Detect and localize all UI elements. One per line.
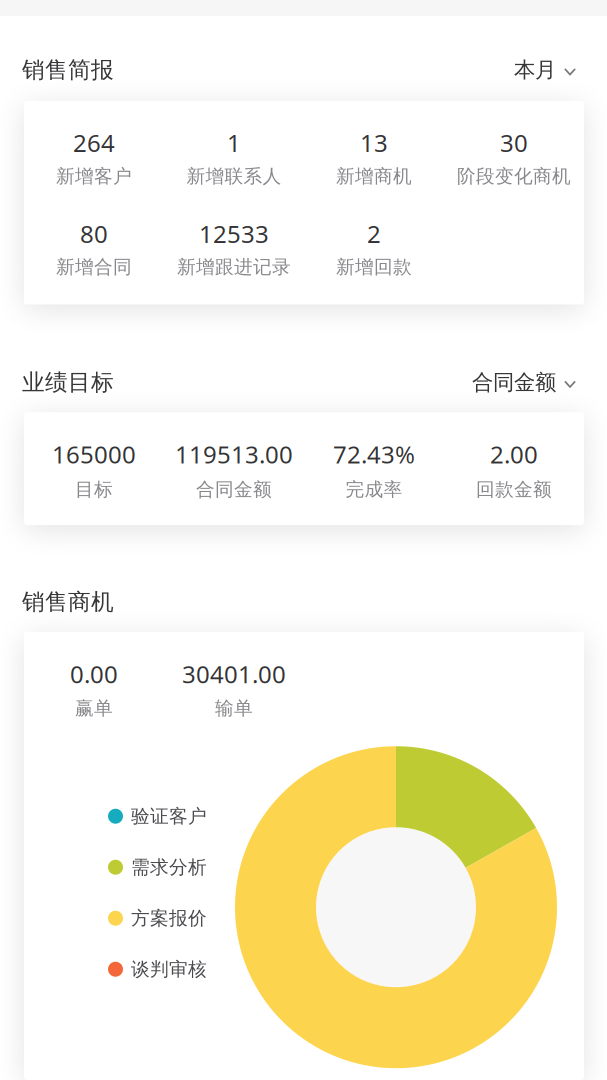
button[interactable]: 谈判审核: [108, 958, 238, 981]
staticText: 阶段变化商机: [457, 165, 571, 188]
button[interactable]: 1: [164, 127, 304, 188]
button[interactable]: 2.00: [444, 438, 584, 501]
button[interactable]: 验证客户: [108, 805, 238, 828]
staticText: 1: [227, 127, 241, 159]
staticText: 0.00: [70, 658, 118, 690]
staticText: 2.00: [490, 438, 538, 470]
staticText: 赢单: [75, 697, 113, 720]
staticText: 需求分析: [131, 856, 207, 879]
button[interactable]: 13: [304, 127, 444, 188]
button[interactable]: 264: [24, 127, 164, 188]
staticText: 新增跟进记录: [177, 255, 291, 278]
button[interactable]: 方案报价: [108, 907, 238, 930]
button[interactable]: 80: [24, 218, 164, 278]
button[interactable]: 72.43%: [304, 438, 444, 501]
staticText: 新增回款: [336, 255, 412, 278]
button[interactable]: 合同金额: [472, 369, 607, 395]
button[interactable]: 119513.00: [164, 438, 304, 501]
staticText: 合同金额: [196, 478, 272, 501]
staticText: 80: [80, 218, 108, 249]
button[interactable]: 需求分析: [108, 856, 238, 879]
staticText: 2: [367, 218, 381, 249]
staticText: 119513.00: [175, 438, 293, 470]
staticText: 新增合同: [56, 255, 132, 278]
staticText: 新增联系人: [186, 165, 281, 188]
staticText: 13: [360, 127, 388, 159]
staticText: 新增商机: [336, 165, 412, 188]
staticText: 165000: [52, 438, 136, 470]
staticText: 业绩目标: [22, 368, 114, 396]
button[interactable]: 12533: [164, 218, 304, 278]
button[interactable]: 30401.00: [164, 658, 304, 720]
staticText: 目标: [75, 478, 113, 501]
staticText: 合同金额: [472, 369, 556, 395]
button[interactable]: 165000: [24, 438, 164, 501]
staticText: 验证客户: [131, 805, 207, 828]
staticText: 新增客户: [56, 165, 132, 188]
staticText: 72.43%: [333, 438, 415, 470]
button[interactable]: 30: [444, 127, 584, 188]
staticText: 谈判审核: [131, 958, 207, 981]
staticText: 264: [73, 127, 115, 159]
staticText: 销售简报: [22, 56, 114, 84]
staticText: 完成率: [345, 478, 402, 501]
staticText: 方案报价: [131, 907, 207, 930]
staticText: 12533: [199, 218, 269, 249]
staticText: 30401.00: [182, 658, 286, 690]
staticText: 回款金额: [476, 478, 552, 501]
button[interactable]: 本月: [514, 57, 607, 83]
staticText: 输单: [215, 697, 253, 720]
button[interactable]: 2: [304, 218, 444, 278]
staticText: 本月: [514, 57, 556, 83]
staticText: 销售商机: [22, 588, 114, 616]
button[interactable]: 0.00: [24, 658, 164, 720]
staticText: 30: [500, 127, 528, 159]
